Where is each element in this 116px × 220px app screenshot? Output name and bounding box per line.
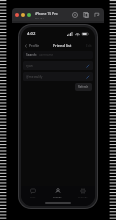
staticText: iOS 18.1	[35, 16, 45, 19]
button[interactable]: Screenshot	[82, 11, 90, 19]
button[interactable]: Chat	[21, 186, 45, 200]
staticText: Settings	[78, 195, 88, 198]
button[interactable]: @meowlify	[23, 72, 93, 81]
staticText: iPhone 15 Pro	[35, 11, 58, 16]
button[interactable]: Refresh	[78, 85, 89, 89]
button[interactable]: Settings	[70, 186, 95, 200]
button[interactable]: Edit ryan	[85, 63, 90, 68]
button[interactable]: Close	[15, 13, 19, 17]
staticText: Friend list	[53, 43, 72, 48]
staticText: @meowlify	[26, 75, 43, 79]
staticText: Profile	[29, 43, 40, 48]
button[interactable]: Friends	[45, 186, 70, 200]
button[interactable]: Home	[71, 11, 79, 19]
button[interactable]: ryan	[23, 61, 93, 70]
staticText: ryan	[26, 64, 33, 68]
staticText: 4:02	[27, 31, 36, 37]
staticText: username	[39, 53, 54, 57]
button[interactable]: Minimize	[21, 13, 25, 17]
button[interactable]: Zoom	[27, 13, 31, 17]
staticText: Edit	[86, 44, 92, 48]
staticText: Refresh	[78, 85, 89, 89]
staticText: Friends	[53, 195, 62, 198]
button[interactable]: Profile	[24, 43, 40, 48]
button[interactable]: Edit @meowlify	[85, 74, 90, 79]
button[interactable]: Edit	[86, 44, 92, 48]
staticText: Chat	[30, 195, 36, 198]
button[interactable]: Record	[93, 11, 101, 19]
button[interactable]: Search:	[23, 51, 93, 59]
staticText: Search:	[26, 53, 37, 57]
